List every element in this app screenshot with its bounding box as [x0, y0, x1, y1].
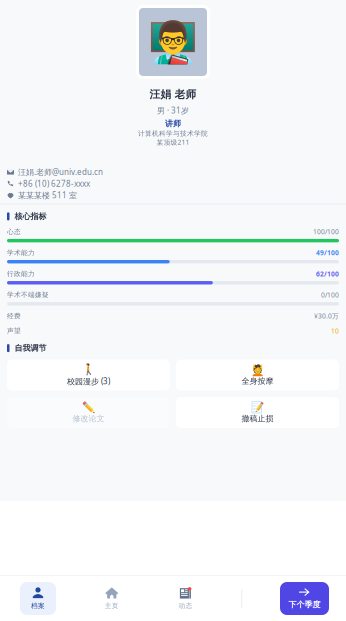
- button[interactable]: 💆: [176, 359, 339, 390]
- staticText: 讲师: [165, 119, 181, 128]
- staticText: 主页: [105, 602, 119, 610]
- staticText: 某顶级211: [156, 138, 189, 147]
- staticText: 经费: [7, 312, 21, 320]
- staticText: 核心指标: [14, 211, 46, 221]
- staticText: 💆: [251, 364, 264, 376]
- staticText: 汪娟.老师@univ.edu.cn: [18, 167, 103, 177]
- staticText: 👨‍🏫: [148, 19, 198, 65]
- staticText: 0/100: [321, 290, 339, 299]
- button[interactable]: 档案: [20, 582, 56, 615]
- button[interactable]: 动态: [167, 582, 203, 615]
- button[interactable]: 🚶: [7, 359, 170, 390]
- button[interactable]: ✏️: [7, 397, 170, 428]
- staticText: 汪娟 老师: [149, 88, 196, 101]
- staticText: 撤稿止损: [241, 414, 273, 423]
- staticText: 62/100: [316, 269, 339, 278]
- staticText: 男 · 31岁: [157, 105, 189, 116]
- staticText: 动态: [178, 602, 192, 610]
- staticText: 校园漫步 (3): [67, 376, 110, 386]
- staticText: 档案: [31, 602, 45, 610]
- staticText: ✏️: [82, 401, 95, 414]
- staticText: 100/100: [313, 227, 339, 236]
- staticText: 学术能力: [7, 249, 35, 257]
- staticText: 📝: [251, 401, 264, 414]
- staticText: 🚶: [82, 364, 95, 376]
- button[interactable]: 下个季度: [280, 582, 329, 615]
- staticText: 49/100: [316, 248, 339, 257]
- staticText: 心态: [7, 228, 21, 236]
- staticText: 声望: [7, 327, 21, 335]
- staticText: ¥30.0万: [314, 311, 339, 320]
- staticText: 某某某楼 511 室: [18, 190, 77, 200]
- button[interactable]: 主页: [94, 582, 130, 615]
- staticText: 学术不端嫌疑: [7, 291, 49, 299]
- staticText: 行政能力: [7, 270, 35, 278]
- staticText: +86 (10) 6278-xxxx: [18, 178, 90, 189]
- button[interactable]: 📝: [176, 397, 339, 428]
- staticText: 修改论文: [72, 414, 104, 423]
- staticText: 下个季度: [288, 600, 320, 609]
- staticText: 全身按摩: [241, 376, 273, 386]
- staticText: 10: [331, 326, 339, 335]
- staticText: 计算机科学与技术学院: [138, 130, 208, 138]
- staticText: 自我调节: [14, 343, 46, 353]
